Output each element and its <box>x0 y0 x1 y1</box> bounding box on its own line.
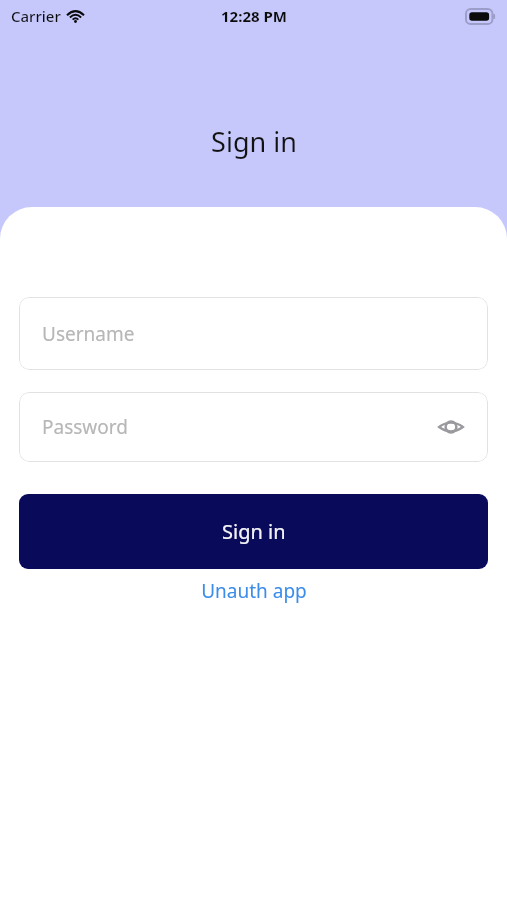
staticText: Sign in <box>222 518 286 545</box>
staticText: Username <box>42 321 135 347</box>
button[interactable]: Sign in <box>19 494 488 569</box>
button[interactable]: Unauth app <box>0 569 507 613</box>
button[interactable]: Show password <box>434 410 468 444</box>
button[interactable]: Username <box>19 297 488 370</box>
staticText: 12:28 PM <box>221 6 287 26</box>
button[interactable]: Password <box>19 392 488 462</box>
staticText: Carrier <box>11 6 61 26</box>
staticText: Unauth app <box>201 578 307 604</box>
staticText: Password <box>42 414 128 440</box>
staticText: Sign in <box>211 123 297 160</box>
